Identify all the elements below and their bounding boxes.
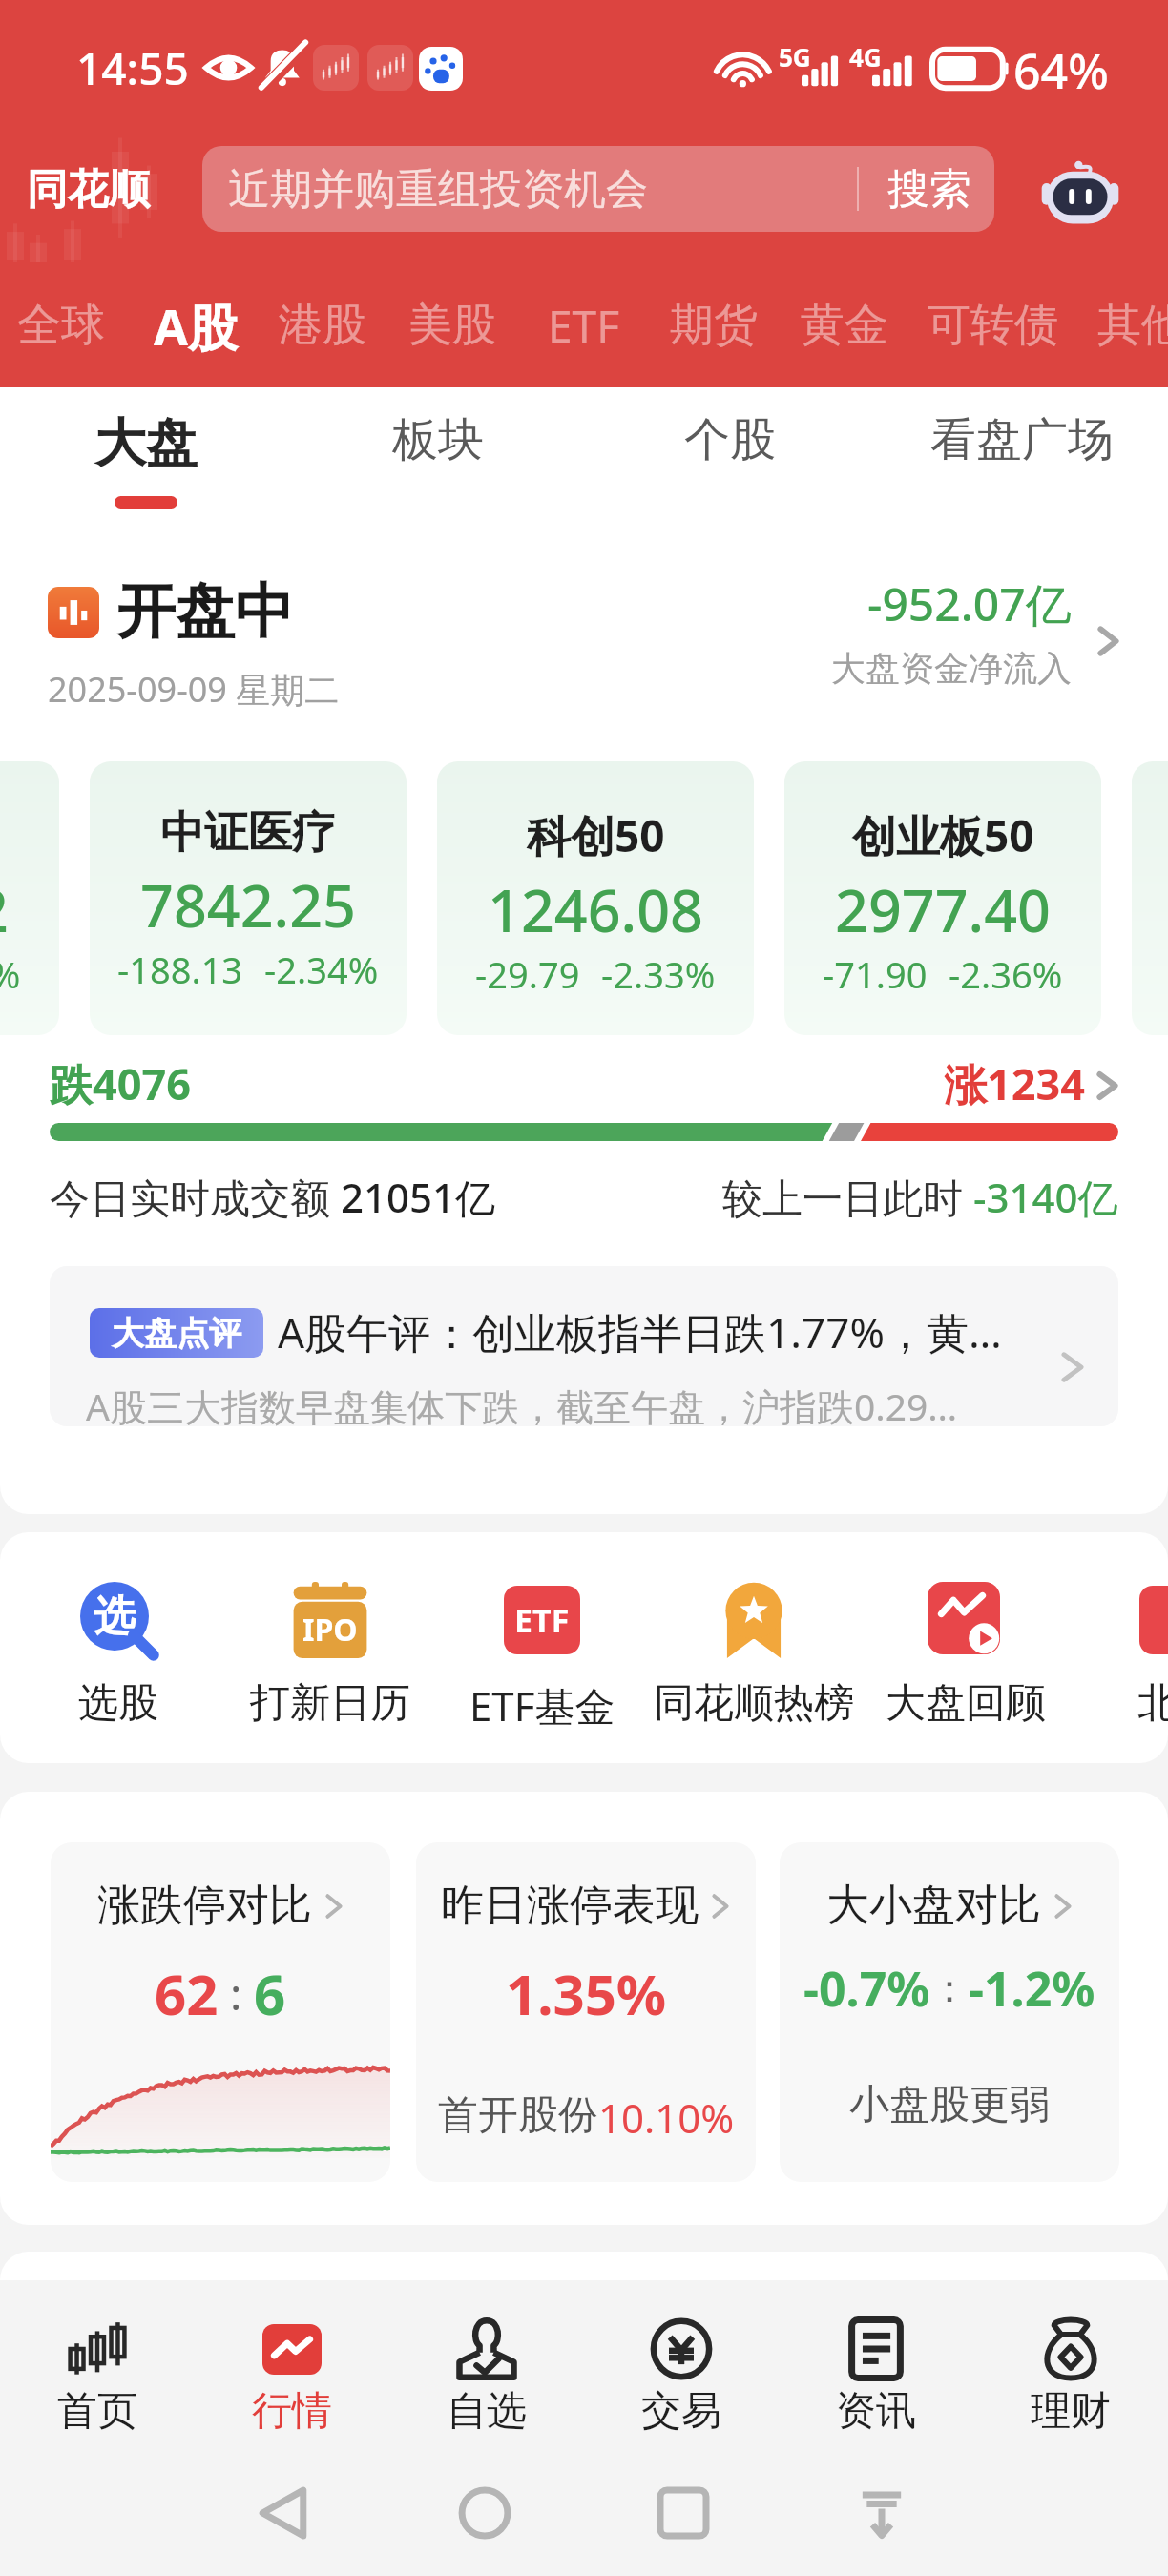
staticText: 21051亿 [341,1170,496,1224]
staticText: 科创50 [527,805,665,865]
staticText: 今日实时成交额 [50,1170,341,1224]
staticText: A股三大指数早盘集体下跌，截至午盘，沪指跌0.29… [86,1381,958,1426]
button[interactable]: 板块 [292,387,584,534]
button[interactable]: A股 [152,282,240,368]
staticText: 14:55 [76,38,189,98]
button[interactable]: 期货 [670,282,758,368]
staticText: IPO [302,1609,358,1651]
button[interactable]: 选 [12,1532,224,1763]
button[interactable]: 中证医疗 [90,761,407,1035]
staticText: ETF [548,296,620,356]
button[interactable]: Hide keyboard [855,2486,908,2540]
staticText: ETF基金 [469,1678,615,1733]
staticText: 62 [155,1956,219,2031]
staticText: -188.13 [117,945,243,994]
staticText: 跌4076 [50,1054,191,1112]
button[interactable]: Home [460,2488,510,2538]
staticText: : [219,1963,254,2024]
staticText: 其他 [1097,298,1168,353]
staticText: 选股 [78,1678,158,1729]
staticText: 全球 [17,298,105,353]
staticText: 看盘广场 [930,411,1114,468]
staticText: 搜索 [887,163,971,216]
staticText: 7842.25 [140,865,356,945]
button[interactable]: AI assistant [1040,153,1120,225]
staticText: -2.33% [601,949,716,999]
staticText: 北交 [1137,1678,1168,1729]
staticText: 首页 [57,2386,137,2433]
button[interactable]: 个股 [584,387,876,534]
staticText: 2977.40 [835,870,1051,949]
staticText: 涨1234 [944,1054,1085,1112]
staticText: 首开股份 [438,2090,598,2141]
button[interactable]: 自选 [389,2280,584,2433]
button[interactable]: 全球 [17,282,105,368]
button[interactable]: 科创50 [437,761,754,1035]
staticText: 10.10% [598,2090,735,2145]
button[interactable]: 其他 [1097,282,1168,368]
button[interactable]: 跌4076 [0,1040,1168,1154]
button[interactable]: 大小盘对比 [780,1842,1119,2182]
staticText: 涨跌停对比 [97,1879,312,1933]
staticText: -1.17% [0,949,21,999]
staticText: 资讯 [836,2386,916,2433]
staticText: 中证医疗 [160,805,336,861]
staticText: 1246.08 [488,870,703,949]
staticText: A股 [154,292,238,360]
staticText: 4G [849,40,882,73]
staticText: 创业板50 [852,805,1034,865]
staticText: 1.35% [506,1956,667,2031]
button[interactable]: 首页 [0,2280,195,2433]
button[interactable]: Recents [660,2490,706,2536]
button[interactable]: 开盘中 [0,534,1168,716]
staticText: 自选 [447,2386,527,2433]
button[interactable]: 涨跌停对比 [51,1842,390,2182]
staticText: 同花顺 [27,164,150,216]
staticText: -2.36% [949,949,1063,999]
staticText: 较上一日此时 [722,1170,973,1224]
staticText: 大盘资金净流入 [831,647,1072,690]
button[interactable]: 行情 [195,2280,389,2433]
button[interactable]: 昨日涨停表现 [416,1842,756,2182]
staticText: 同花顺热榜 [654,1678,854,1729]
staticText: 4398.12 [0,870,9,949]
button[interactable]: Back [259,2488,308,2538]
button[interactable]: 创业板50 [784,761,1101,1035]
button[interactable]: 可转债 [927,282,1058,368]
button[interactable]: 看盘广场 [876,387,1168,534]
button[interactable]: ETF [436,1532,648,1763]
staticText: -3140亿 [973,1170,1118,1224]
staticText: 黄金 [801,298,888,353]
staticText: ETF [514,1598,570,1642]
button[interactable]: IPO [224,1532,436,1763]
button[interactable]: 美股 [408,282,496,368]
staticText: -29.79 [475,949,580,999]
button[interactable]: 北交 [1072,1532,1168,1763]
staticText: 64% [1013,38,1109,103]
button[interactable]: 同花顺热榜 [648,1532,860,1763]
button[interactable]: 大盘点评 [50,1266,1118,1426]
staticText: -71.90 [823,949,928,999]
staticText: 行情 [252,2386,332,2433]
staticText: 期货 [670,298,758,353]
button[interactable]: 港股 [279,282,366,368]
staticText: -1.2% [969,1956,1095,2021]
staticText: -2.34% [264,945,379,994]
button[interactable]: 黄金 [801,282,888,368]
staticText: 美股 [408,298,496,353]
staticText: 理财 [1031,2386,1111,2433]
button[interactable]: 大盘回顾 [860,1532,1072,1763]
button[interactable]: 资讯 [779,2280,973,2433]
button[interactable]: 交易 [584,2280,779,2433]
button[interactable]: 近期并购重组投资机会 [202,146,994,232]
staticText: 交易 [641,2386,721,2433]
staticText: 大小盘对比 [826,1879,1041,1933]
staticText: 可转债 [927,298,1058,353]
button[interactable]: ETF [538,282,630,368]
staticText: 选 [94,1590,136,1643]
button[interactable]: 理财 [973,2280,1168,2433]
button[interactable]: 上证指数 [1132,761,1168,1035]
button[interactable]: 沪深300 [0,761,59,1035]
staticText: 小盘股更弱 [849,2080,1050,2130]
button[interactable]: 大盘 [0,387,292,534]
